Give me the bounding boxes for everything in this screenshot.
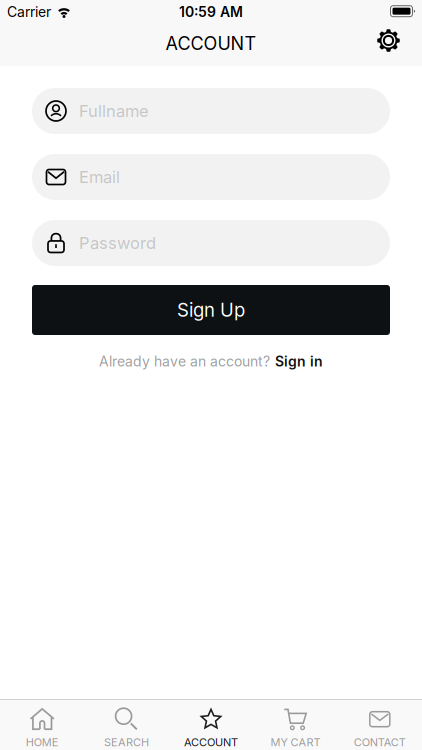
staticText: Password [79, 233, 156, 253]
staticText: HOME [26, 736, 59, 749]
staticText: Sign Up [177, 299, 245, 321]
staticText: ACCOUNT [184, 736, 238, 749]
staticText: SEARCH [104, 736, 149, 749]
staticText: Sign in [275, 353, 323, 370]
staticText: Already have an account? [99, 353, 270, 370]
staticText: ACCOUNT [165, 33, 256, 54]
staticText: CONTACT [354, 736, 406, 749]
staticText: Email [79, 167, 120, 187]
staticText: 10:59 AM [179, 3, 243, 20]
staticText: Fullname [79, 101, 149, 121]
staticText: MY CART [270, 736, 320, 749]
staticText: Carrier [7, 3, 51, 20]
